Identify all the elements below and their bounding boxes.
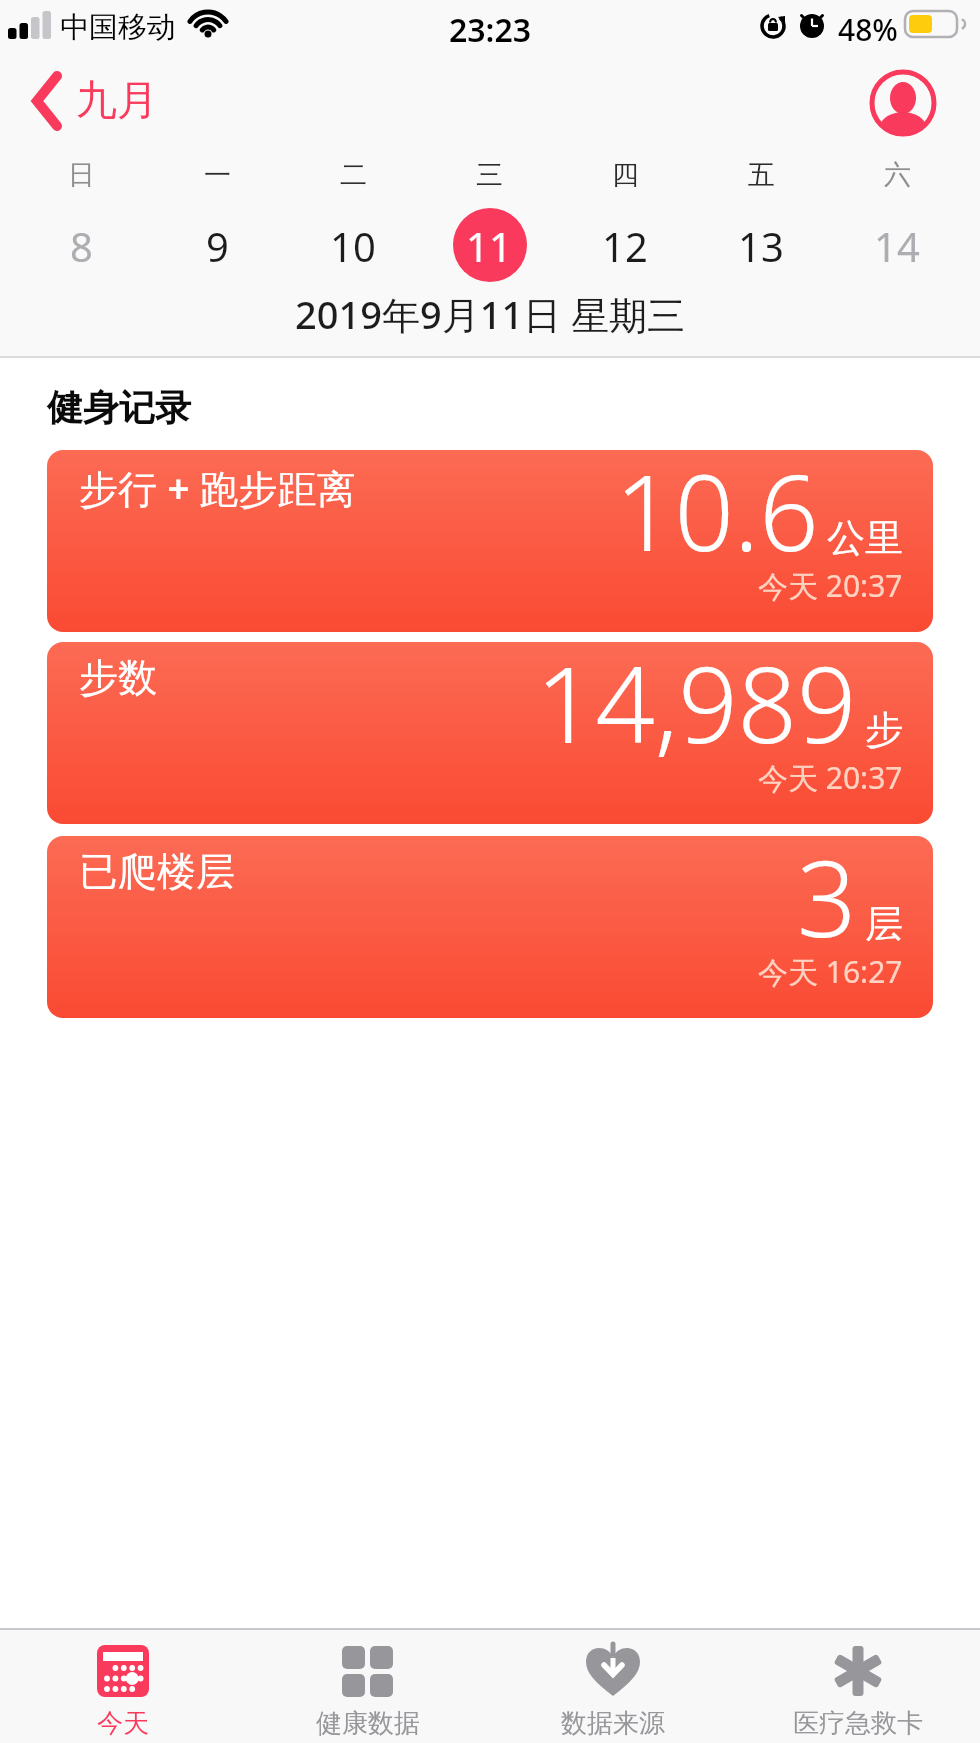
button[interactable]: 13 [693,218,829,274]
staticText: 一 [204,158,231,192]
staticText: 今天 16:27 [758,951,903,992]
staticText: 步数 [79,653,157,702]
button[interactable]: 健康数据 [245,1628,490,1743]
staticText: 五 [748,158,775,192]
staticText: 六 [884,158,911,192]
staticText: 三 [476,158,503,192]
staticText: 11 [466,219,512,273]
staticText: 层 [865,900,903,948]
staticText: 中国移动 [60,9,176,46]
staticText: 公里 [827,514,903,562]
staticText: 10 [330,219,376,273]
staticText: 步行 + 跑步距离 [79,461,356,514]
staticText: 8 [70,219,93,273]
staticText: 健身记录 [47,385,191,430]
staticText: 医疗急救卡 [793,1707,923,1740]
staticText: 14 [874,219,920,273]
button[interactable] [870,70,936,136]
button[interactable]: 14 [829,218,965,274]
staticText: 九月 [76,75,158,127]
staticText: 2019年9月11日 星期三 [0,288,980,340]
staticText: 14,989 [536,642,857,774]
staticText: 日 [68,158,95,192]
button[interactable]: 10 [285,218,421,274]
button[interactable]: 数据来源 [490,1628,735,1743]
button[interactable]: 步数 [47,642,933,824]
staticText: 12 [602,219,648,273]
staticText: 步 [865,706,903,754]
staticText: 健康数据 [316,1707,420,1740]
staticText: 今天 [97,1707,149,1740]
staticText: 二 [340,158,367,192]
staticText: 数据来源 [561,1707,665,1740]
button[interactable]: 步行 + 跑步距离 [47,450,933,632]
staticText: 已爬楼层 [79,847,235,896]
staticText: 23:23 [0,8,980,52]
staticText: 3 [797,836,857,968]
staticText: 今天 20:37 [758,565,903,606]
button[interactable]: 9 [149,218,285,274]
button[interactable]: 8 [13,218,149,274]
staticText: 今天 20:37 [758,757,903,798]
staticText: 四 [612,158,639,192]
staticText: 13 [738,219,784,273]
button[interactable]: 今天 [0,1628,245,1743]
button[interactable]: 九月 [30,70,158,132]
staticText: 10.6 [615,450,819,582]
button[interactable]: 11 [421,218,557,274]
staticText: 48% [838,9,898,50]
button[interactable]: 12 [557,218,693,274]
button[interactable]: 医疗急救卡 [735,1628,980,1743]
button[interactable]: 已爬楼层 [47,836,933,1018]
staticText: 9 [206,219,229,273]
